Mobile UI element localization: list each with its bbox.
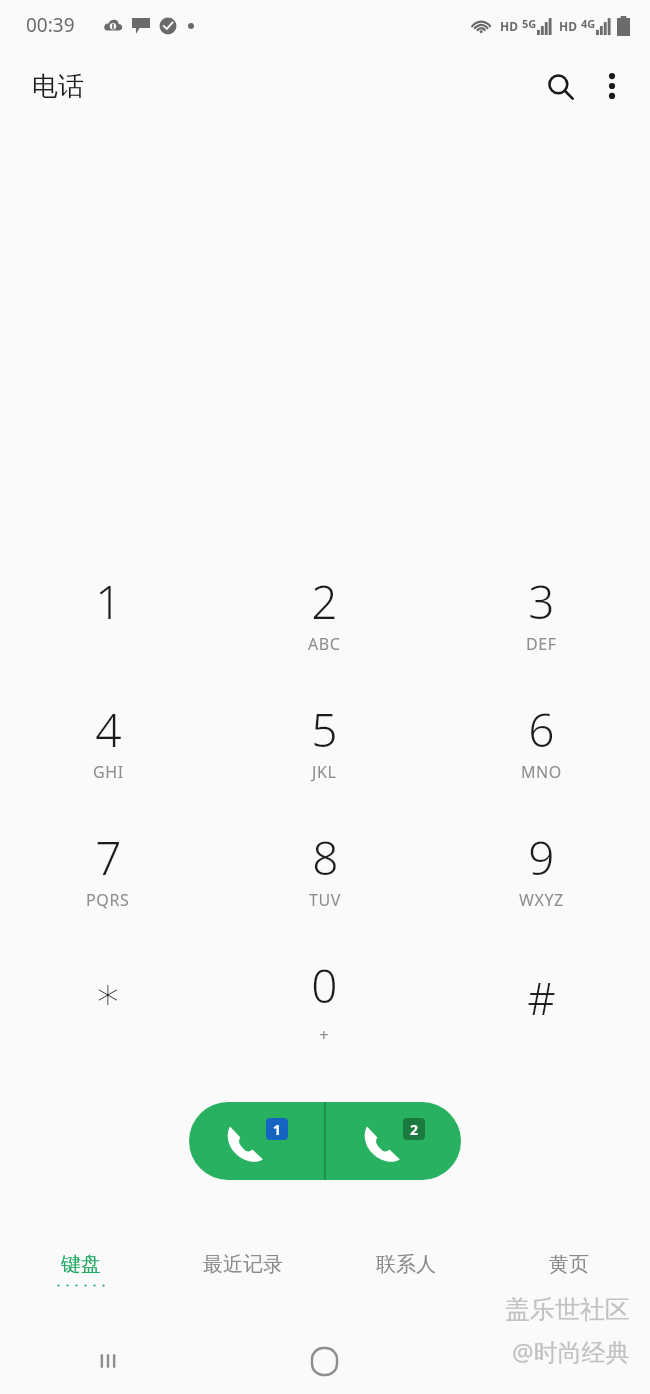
- staticText: 黄页: [549, 1252, 589, 1277]
- staticText: 4G: [581, 16, 596, 31]
- button[interactable]: Search: [536, 62, 584, 110]
- staticText: DEF: [526, 633, 557, 655]
- button[interactable]: 键盘: [0, 1232, 162, 1304]
- staticText: 盖乐世社区: [505, 1294, 630, 1325]
- button[interactable]: 黄页: [487, 1232, 650, 1304]
- staticText: 7: [95, 826, 122, 889]
- staticText: HD: [500, 18, 518, 34]
- button[interactable]: 8: [216, 812, 433, 940]
- staticText: ABC: [308, 633, 341, 655]
- button[interactable]: Call with SIM 1: [189, 1102, 324, 1180]
- staticText: 9: [528, 826, 555, 889]
- button[interactable]: 6: [433, 684, 650, 812]
- staticText: GHI: [93, 761, 124, 783]
- staticText: 最近记录: [203, 1252, 283, 1277]
- button[interactable]: 9: [433, 812, 650, 940]
- staticText: 3: [528, 570, 555, 633]
- button[interactable]: ∗: [0, 940, 216, 1062]
- staticText: 6: [528, 698, 555, 761]
- button[interactable]: Back: [433, 1328, 650, 1394]
- staticText: 联系人: [376, 1252, 436, 1277]
- button[interactable]: 3: [433, 556, 650, 684]
- staticText: @时尚经典: [512, 1335, 630, 1368]
- staticText: 00:39: [26, 12, 75, 38]
- staticText: #: [527, 968, 556, 1028]
- staticText: 0: [311, 954, 338, 1017]
- staticText: 2: [410, 1120, 419, 1139]
- staticText: 4: [95, 698, 122, 761]
- button[interactable]: 0: [216, 940, 433, 1062]
- staticText: HD: [559, 18, 577, 34]
- button[interactable]: #: [433, 940, 650, 1062]
- button[interactable]: 7: [0, 812, 216, 940]
- button[interactable]: 4: [0, 684, 216, 812]
- staticText: MNO: [521, 761, 562, 783]
- staticText: JKL: [312, 761, 337, 783]
- staticText: 8: [312, 826, 339, 889]
- staticText: 5: [311, 698, 338, 761]
- staticText: 键盘: [61, 1252, 101, 1277]
- button[interactable]: Home: [216, 1328, 433, 1394]
- staticText: 1: [273, 1120, 282, 1139]
- button[interactable]: Call with SIM 2: [326, 1102, 461, 1180]
- button[interactable]: 最近记录: [162, 1232, 324, 1304]
- staticText: 电话: [32, 70, 84, 103]
- button[interactable]: 1: [0, 556, 216, 684]
- staticText: ∗: [94, 968, 122, 1019]
- button[interactable]: 5: [216, 684, 433, 812]
- staticText: PQRS: [86, 889, 130, 911]
- staticText: 5G: [522, 16, 537, 31]
- button[interactable]: Recents: [0, 1328, 216, 1394]
- staticText: WXYZ: [519, 889, 564, 911]
- staticText: 1: [95, 570, 122, 633]
- staticText: 2: [311, 570, 338, 633]
- staticText: +: [319, 1023, 330, 1046]
- staticText: TUV: [309, 889, 341, 911]
- button[interactable]: 联系人: [324, 1232, 487, 1304]
- button[interactable]: 2: [216, 556, 433, 684]
- button[interactable]: More options: [588, 62, 636, 110]
